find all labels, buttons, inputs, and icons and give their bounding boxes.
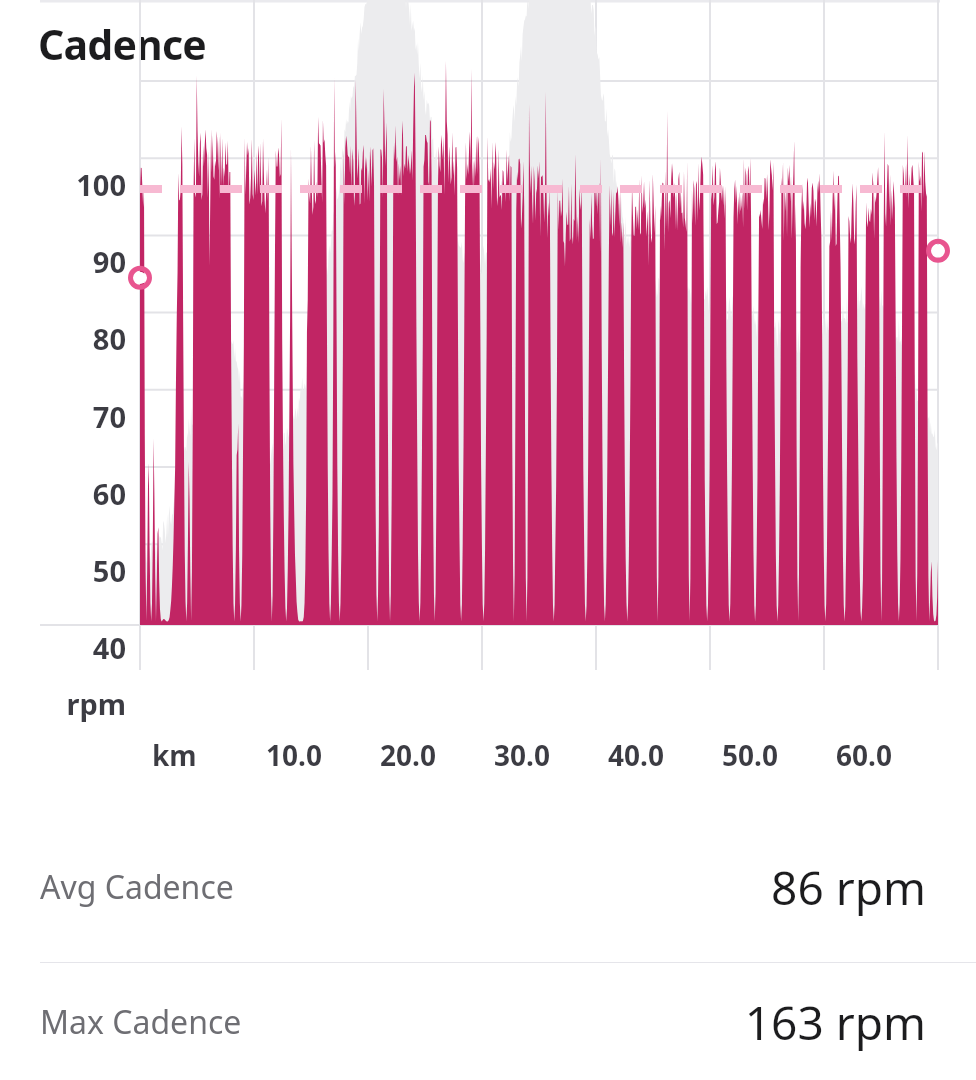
button[interactable]: 100	[0, 0, 976, 790]
staticText: 70	[36, 397, 126, 436]
staticText: 50.0	[722, 736, 778, 774]
staticText: km	[152, 736, 197, 774]
staticText: 40	[36, 628, 126, 667]
staticText: Avg Cadence	[40, 865, 234, 909]
staticText: 20.0	[380, 736, 436, 774]
staticText: Cadence	[38, 16, 206, 72]
staticText: 60.0	[836, 736, 892, 774]
staticText: 90	[36, 242, 126, 281]
staticText: 80	[36, 319, 126, 358]
staticText: 86 rpm	[771, 856, 926, 919]
staticText: 163 rpm	[744, 991, 926, 1054]
staticText: Max Cadence	[40, 1000, 242, 1044]
staticText: 50	[36, 551, 126, 590]
button[interactable]: Max Cadence	[0, 963, 976, 1080]
staticText: 100	[36, 165, 126, 204]
staticText: 30.0	[494, 736, 550, 774]
staticText: rpm	[36, 684, 126, 723]
staticText: 10.0	[266, 736, 322, 774]
staticText: 40.0	[608, 736, 664, 774]
button[interactable]: Avg Cadence	[0, 812, 976, 962]
staticText: 60	[36, 474, 126, 513]
